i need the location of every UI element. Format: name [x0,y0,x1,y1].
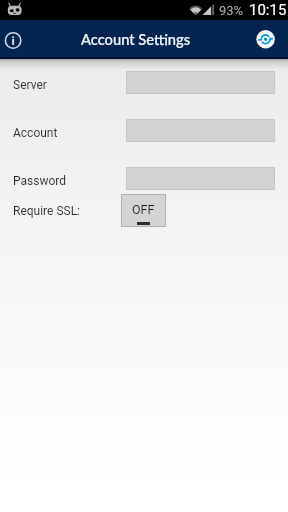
staticText: Password [13,174,67,188]
button[interactable]: OFF [121,194,166,227]
staticText: Account [13,126,58,140]
button[interactable] [126,167,275,190]
staticText: Account Settings [81,30,191,48]
button[interactable] [126,119,275,142]
staticText: Server [13,78,47,92]
button[interactable]: Sync [254,20,288,57]
staticText: OFF [132,202,155,217]
staticText: 93% [219,3,244,18]
button[interactable] [126,71,275,94]
staticText: Require SSL: [13,204,81,218]
button[interactable]: Info [0,20,27,57]
staticText: 10:15 [249,1,287,19]
